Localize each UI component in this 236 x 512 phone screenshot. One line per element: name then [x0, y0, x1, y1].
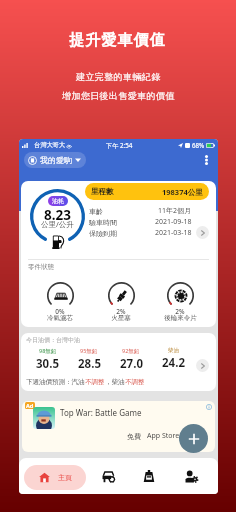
- staticText: 68%: [192, 141, 205, 149]
- staticText: 車齡: [89, 207, 103, 216]
- button[interactable]: 2%: [87, 280, 155, 325]
- staticText: 95無鉛: [80, 347, 98, 355]
- staticText: 11年2個月: [158, 206, 192, 216]
- staticText: 台灣大哥大: [34, 141, 65, 149]
- button[interactable]: 0%: [26, 280, 94, 325]
- staticText: 不調整: [125, 378, 145, 386]
- staticText: 里程數: [91, 187, 114, 196]
- staticText: 92無鉛: [122, 347, 140, 355]
- staticText: 公里/公升: [41, 219, 74, 229]
- staticText: 8.23: [44, 206, 71, 224]
- button[interactable]: Vehicle details: [196, 226, 209, 239]
- staticText: 2%: [116, 307, 126, 316]
- button[interactable]: More options: [198, 152, 214, 168]
- staticText: 不調整: [85, 378, 105, 386]
- staticText: 98無鉛: [39, 347, 57, 355]
- button[interactable]: Vehicle: [101, 469, 115, 483]
- staticText: 驗車時間: [89, 218, 117, 227]
- button[interactable]: 主頁: [24, 465, 86, 490]
- staticText: 下週油價預測：汽油: [26, 378, 85, 386]
- staticText: 保險到期: [89, 229, 117, 238]
- staticText: 冷氣濾芯: [47, 314, 73, 322]
- button[interactable]: 2%: [146, 280, 214, 325]
- button[interactable]: Add record: [179, 424, 208, 453]
- button[interactable]: 里程數: [85, 183, 209, 200]
- staticText: 198374公里: [162, 187, 203, 197]
- staticText: 油耗: [52, 197, 64, 205]
- staticText: 下午 2:54: [106, 141, 133, 149]
- staticText: 後輪來令片: [164, 314, 197, 322]
- staticText: 我的愛駒: [40, 155, 72, 165]
- staticText: 2%: [175, 307, 185, 316]
- button[interactable]: Fuel price details: [196, 359, 209, 372]
- staticText: 火星塞: [111, 314, 131, 322]
- staticText: Top War: Battle Game: [60, 407, 142, 418]
- button[interactable]: Ad: [22, 401, 215, 452]
- staticText: 28.5: [78, 356, 101, 372]
- staticText: 2021-03-18: [155, 228, 192, 238]
- staticText: 增加您日後出售愛車的價值: [62, 90, 175, 101]
- staticText: 24.2: [162, 355, 185, 371]
- staticText: 27.0: [120, 356, 143, 372]
- staticText: App Store: [147, 431, 180, 441]
- button[interactable]: 今日油價：台灣中油: [21, 333, 216, 391]
- staticText: 免費: [127, 432, 141, 441]
- staticText: Ad: [26, 402, 34, 409]
- staticText: 30.5: [36, 356, 59, 372]
- staticText: ，柴油: [105, 378, 125, 386]
- button[interactable]: Account settings: [184, 469, 198, 483]
- staticText: 今日油價：台灣中油: [26, 336, 80, 344]
- staticText: 主頁: [58, 473, 72, 482]
- staticText: 建立完整的車輛紀錄: [76, 71, 161, 82]
- staticText: 提升愛車價值: [69, 31, 167, 50]
- button[interactable]: 我的愛駒: [24, 152, 86, 168]
- staticText: 柴油: [168, 347, 179, 354]
- staticText: 2021-09-18: [155, 217, 192, 227]
- staticText: 零件狀態: [28, 263, 54, 271]
- staticText: 0%: [55, 307, 65, 316]
- button[interactable]: Records: [142, 469, 156, 483]
